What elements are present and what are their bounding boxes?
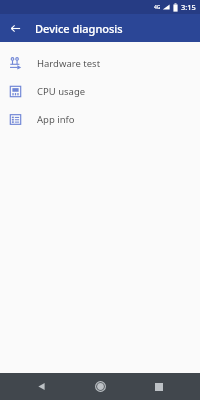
staticText: CPU usage xyxy=(37,85,86,98)
button[interactable]: Hardware test xyxy=(0,49,200,77)
staticText: Device diagnosis xyxy=(35,21,123,36)
button[interactable]: CPU usage xyxy=(0,77,200,105)
button[interactable]: Home xyxy=(82,373,118,400)
staticText: App info xyxy=(37,113,75,126)
staticText: 3:15 xyxy=(181,2,196,12)
button[interactable]: App info xyxy=(0,105,200,133)
button[interactable]: Navigate up xyxy=(5,18,25,38)
staticText: 4G xyxy=(154,4,161,11)
button[interactable]: Recent apps xyxy=(141,373,177,400)
button[interactable]: Back xyxy=(23,373,59,400)
staticText: Hardware test xyxy=(37,57,101,70)
